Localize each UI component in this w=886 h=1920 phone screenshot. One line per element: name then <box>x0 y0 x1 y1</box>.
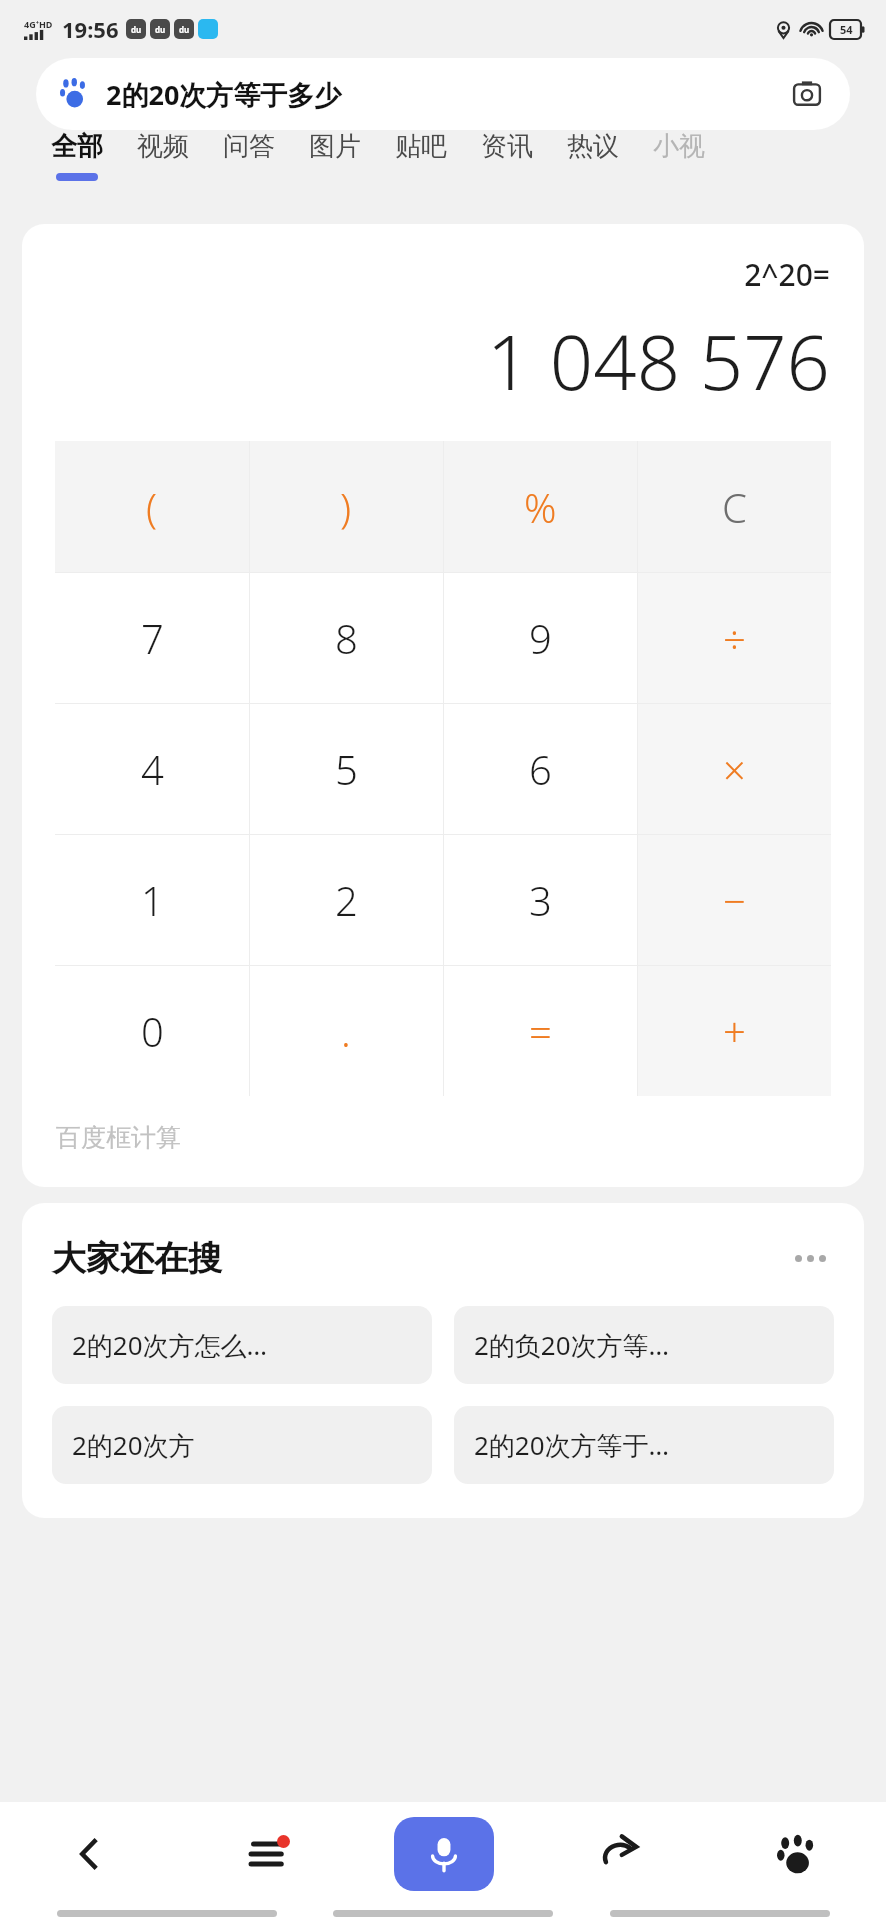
button[interactable]: Camera search <box>788 75 826 113</box>
staticText: 54 <box>840 22 853 37</box>
staticText: ) <box>340 480 352 534</box>
staticText: 百度框计算 <box>56 1122 181 1153</box>
staticText: 7 <box>141 611 164 665</box>
staticText: 5 <box>335 742 358 796</box>
staticText: C <box>722 480 747 534</box>
button[interactable]: 5 <box>249 703 443 834</box>
button[interactable]: 热议 <box>550 130 636 173</box>
button[interactable]: Menu <box>178 1802 355 1906</box>
staticText: 2的负20次方等… <box>474 1327 670 1363</box>
button[interactable]: = <box>443 965 637 1096</box>
button[interactable]: 2的20次方等于… <box>454 1406 834 1484</box>
button[interactable]: Voice search <box>394 1817 494 1891</box>
button[interactable]: . <box>249 965 443 1096</box>
staticText: 2^20= <box>22 254 830 295</box>
button[interactable]: 4 <box>55 703 249 834</box>
button[interactable]: 9 <box>443 572 637 703</box>
button[interactable]: C <box>637 441 831 572</box>
button[interactable]: 2的20次方怎么… <box>52 1306 432 1384</box>
staticText: 贴吧 <box>395 130 447 163</box>
staticText: 4 <box>141 742 164 796</box>
staticText: 全部 <box>51 130 103 163</box>
staticText: du <box>131 24 142 35</box>
button[interactable]: 2的负20次方等… <box>454 1306 834 1384</box>
staticText: × <box>723 742 746 796</box>
staticText: 3 <box>529 873 552 927</box>
button[interactable]: 1 <box>55 834 249 965</box>
staticText: 问答 <box>223 130 275 163</box>
staticText: = <box>529 1004 552 1058</box>
button[interactable]: 问答 <box>206 130 292 173</box>
staticText: 大家还在搜 <box>52 1237 222 1280</box>
button[interactable]: 全部 <box>34 130 120 181</box>
button[interactable]: 小视 <box>636 130 722 173</box>
staticText: ( <box>146 480 158 534</box>
button[interactable]: Home <box>709 1802 886 1906</box>
staticText: 19:56 <box>62 14 119 44</box>
staticText: 2 <box>335 873 358 927</box>
button[interactable]: 2的20次方等于多少 <box>36 58 850 130</box>
staticText: 0 <box>141 1004 164 1058</box>
staticText: 2的20次方怎么… <box>72 1327 268 1363</box>
staticText: ÷ <box>723 611 746 665</box>
button[interactable]: 图片 <box>292 130 378 173</box>
staticText: 6 <box>529 742 552 796</box>
button[interactable]: ) <box>249 441 443 572</box>
staticText: 2的20次方等于… <box>474 1427 670 1463</box>
staticText: 4G⁺HD <box>24 18 53 30</box>
button[interactable]: − <box>637 834 831 965</box>
button[interactable]: 2的20次方 <box>52 1406 432 1484</box>
staticText: 资讯 <box>481 130 533 163</box>
staticText: 视频 <box>137 130 189 163</box>
staticText: % <box>524 480 557 534</box>
button[interactable]: Back <box>0 1802 178 1906</box>
button[interactable]: More options <box>787 1247 834 1270</box>
staticText: du <box>179 24 190 35</box>
button[interactable]: 8 <box>249 572 443 703</box>
button[interactable]: 7 <box>55 572 249 703</box>
staticText: 2的20次方 <box>72 1427 195 1463</box>
staticText: 8 <box>335 611 358 665</box>
button[interactable]: + <box>637 965 831 1096</box>
staticText: du <box>155 24 166 35</box>
staticText: 1 <box>141 873 164 927</box>
staticText: 热议 <box>567 130 619 163</box>
button[interactable]: 资讯 <box>464 130 550 173</box>
staticText: 9 <box>529 611 552 665</box>
staticText: 图片 <box>309 130 361 163</box>
staticText: + <box>723 1004 746 1058</box>
button[interactable]: 2 <box>249 834 443 965</box>
button[interactable]: 视频 <box>120 130 206 173</box>
button[interactable]: ( <box>55 441 249 572</box>
staticText: 1 048 576 <box>22 309 830 413</box>
button[interactable]: × <box>637 703 831 834</box>
button[interactable]: 6 <box>443 703 637 834</box>
button[interactable]: 贴吧 <box>378 130 464 173</box>
staticText: . <box>341 1004 351 1058</box>
button[interactable]: 3 <box>443 834 637 965</box>
button[interactable]: 0 <box>55 965 249 1096</box>
staticText: − <box>723 873 746 927</box>
staticText: 小视 <box>653 130 705 163</box>
staticText: 2的20次方等于多少 <box>106 76 342 113</box>
button[interactable]: ÷ <box>637 572 831 703</box>
button[interactable]: % <box>443 441 637 572</box>
button[interactable]: Share <box>532 1802 709 1906</box>
